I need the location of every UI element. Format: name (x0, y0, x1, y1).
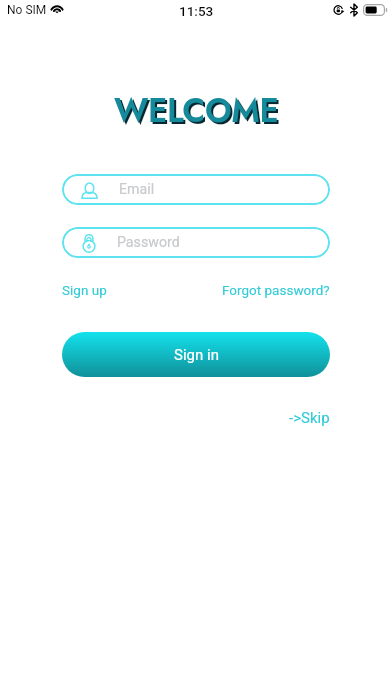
staticText: 11:53 (179, 3, 214, 19)
staticText: Sign in (174, 346, 219, 364)
staticText: ->Skip (289, 409, 330, 427)
button[interactable]: Password (62, 227, 330, 258)
staticText: WELCOME (114, 87, 279, 135)
button[interactable]: Forgot password? (222, 282, 330, 298)
staticText: No SIM (7, 3, 47, 17)
button[interactable]: Sign in (62, 332, 330, 377)
button[interactable]: Sign up (62, 282, 107, 298)
staticText: Sign up (62, 282, 107, 298)
button[interactable]: ->Skip (289, 409, 330, 427)
staticText: Email (119, 181, 155, 198)
staticText: Password (117, 234, 180, 251)
staticText: Forgot password? (222, 282, 330, 298)
button[interactable]: Email (62, 174, 330, 205)
staticText: WELCOME (116, 89, 281, 137)
